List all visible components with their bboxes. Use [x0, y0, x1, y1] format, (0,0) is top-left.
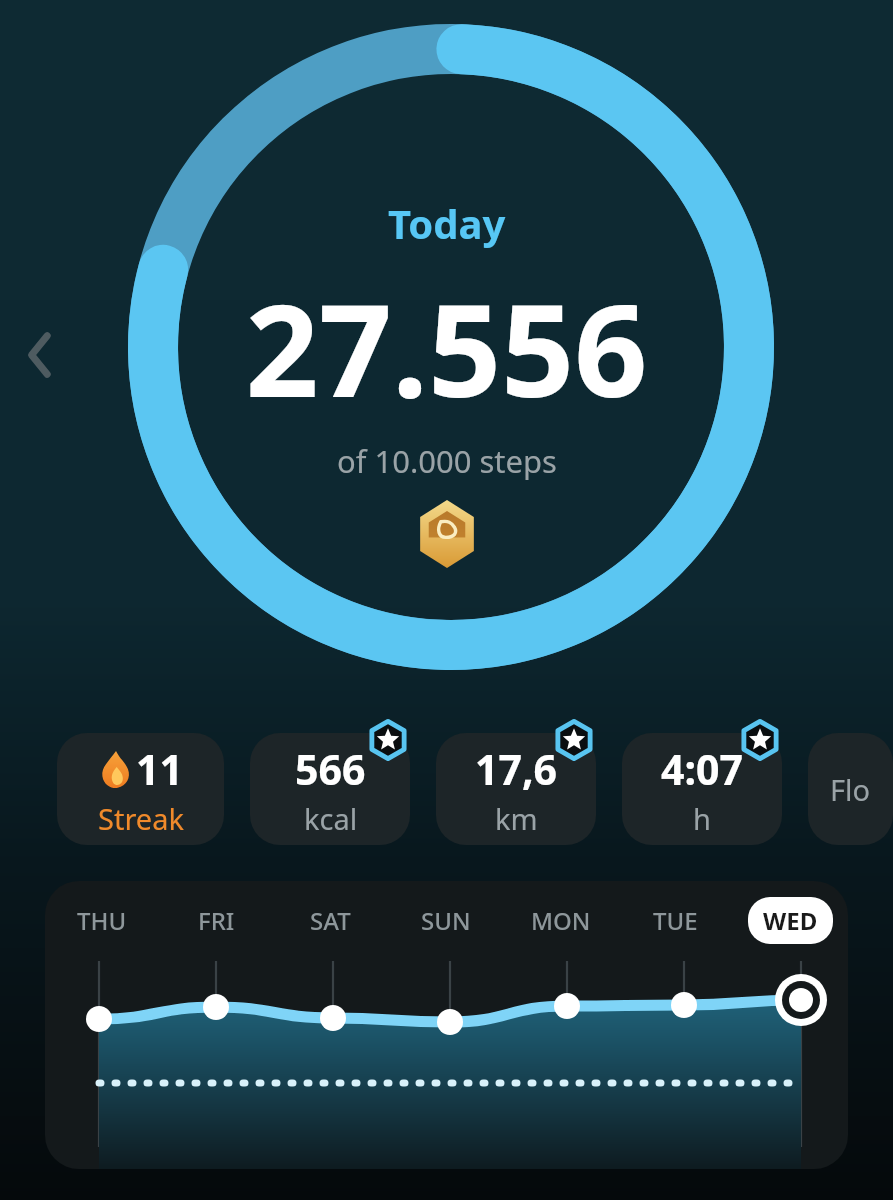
button[interactable]: 20K steps badge — [416, 500, 478, 568]
button[interactable]: 17,6 — [436, 733, 596, 845]
staticText: MON — [531, 904, 591, 937]
staticText: Flo — [830, 770, 871, 809]
staticText: Streak — [98, 799, 184, 838]
staticText: Today — [388, 196, 506, 250]
staticText: 17,6 — [475, 741, 558, 797]
staticText: 4:07 — [661, 741, 743, 797]
staticText: SUN — [421, 904, 471, 937]
button[interactable]: THU — [45, 881, 848, 1169]
staticText: WED — [763, 904, 818, 937]
staticText: TUE — [653, 904, 698, 937]
staticText: THU — [77, 904, 127, 937]
staticText: km — [495, 799, 538, 838]
staticText: 566 — [295, 741, 366, 797]
button[interactable]: 4:07 — [622, 733, 782, 845]
button[interactable]: Previous day — [10, 318, 70, 392]
staticText: FRI — [198, 904, 235, 937]
staticText: h — [693, 799, 711, 838]
button[interactable]: 11 — [57, 733, 224, 845]
button[interactable]: 566 — [250, 733, 410, 845]
staticText: SAT — [310, 904, 351, 937]
staticText: of 10.000 steps — [337, 440, 557, 482]
button[interactable]: Flo — [808, 733, 893, 845]
staticText: 11 — [136, 741, 183, 797]
staticText: 27.556 — [245, 260, 648, 434]
staticText: kcal — [304, 799, 358, 838]
